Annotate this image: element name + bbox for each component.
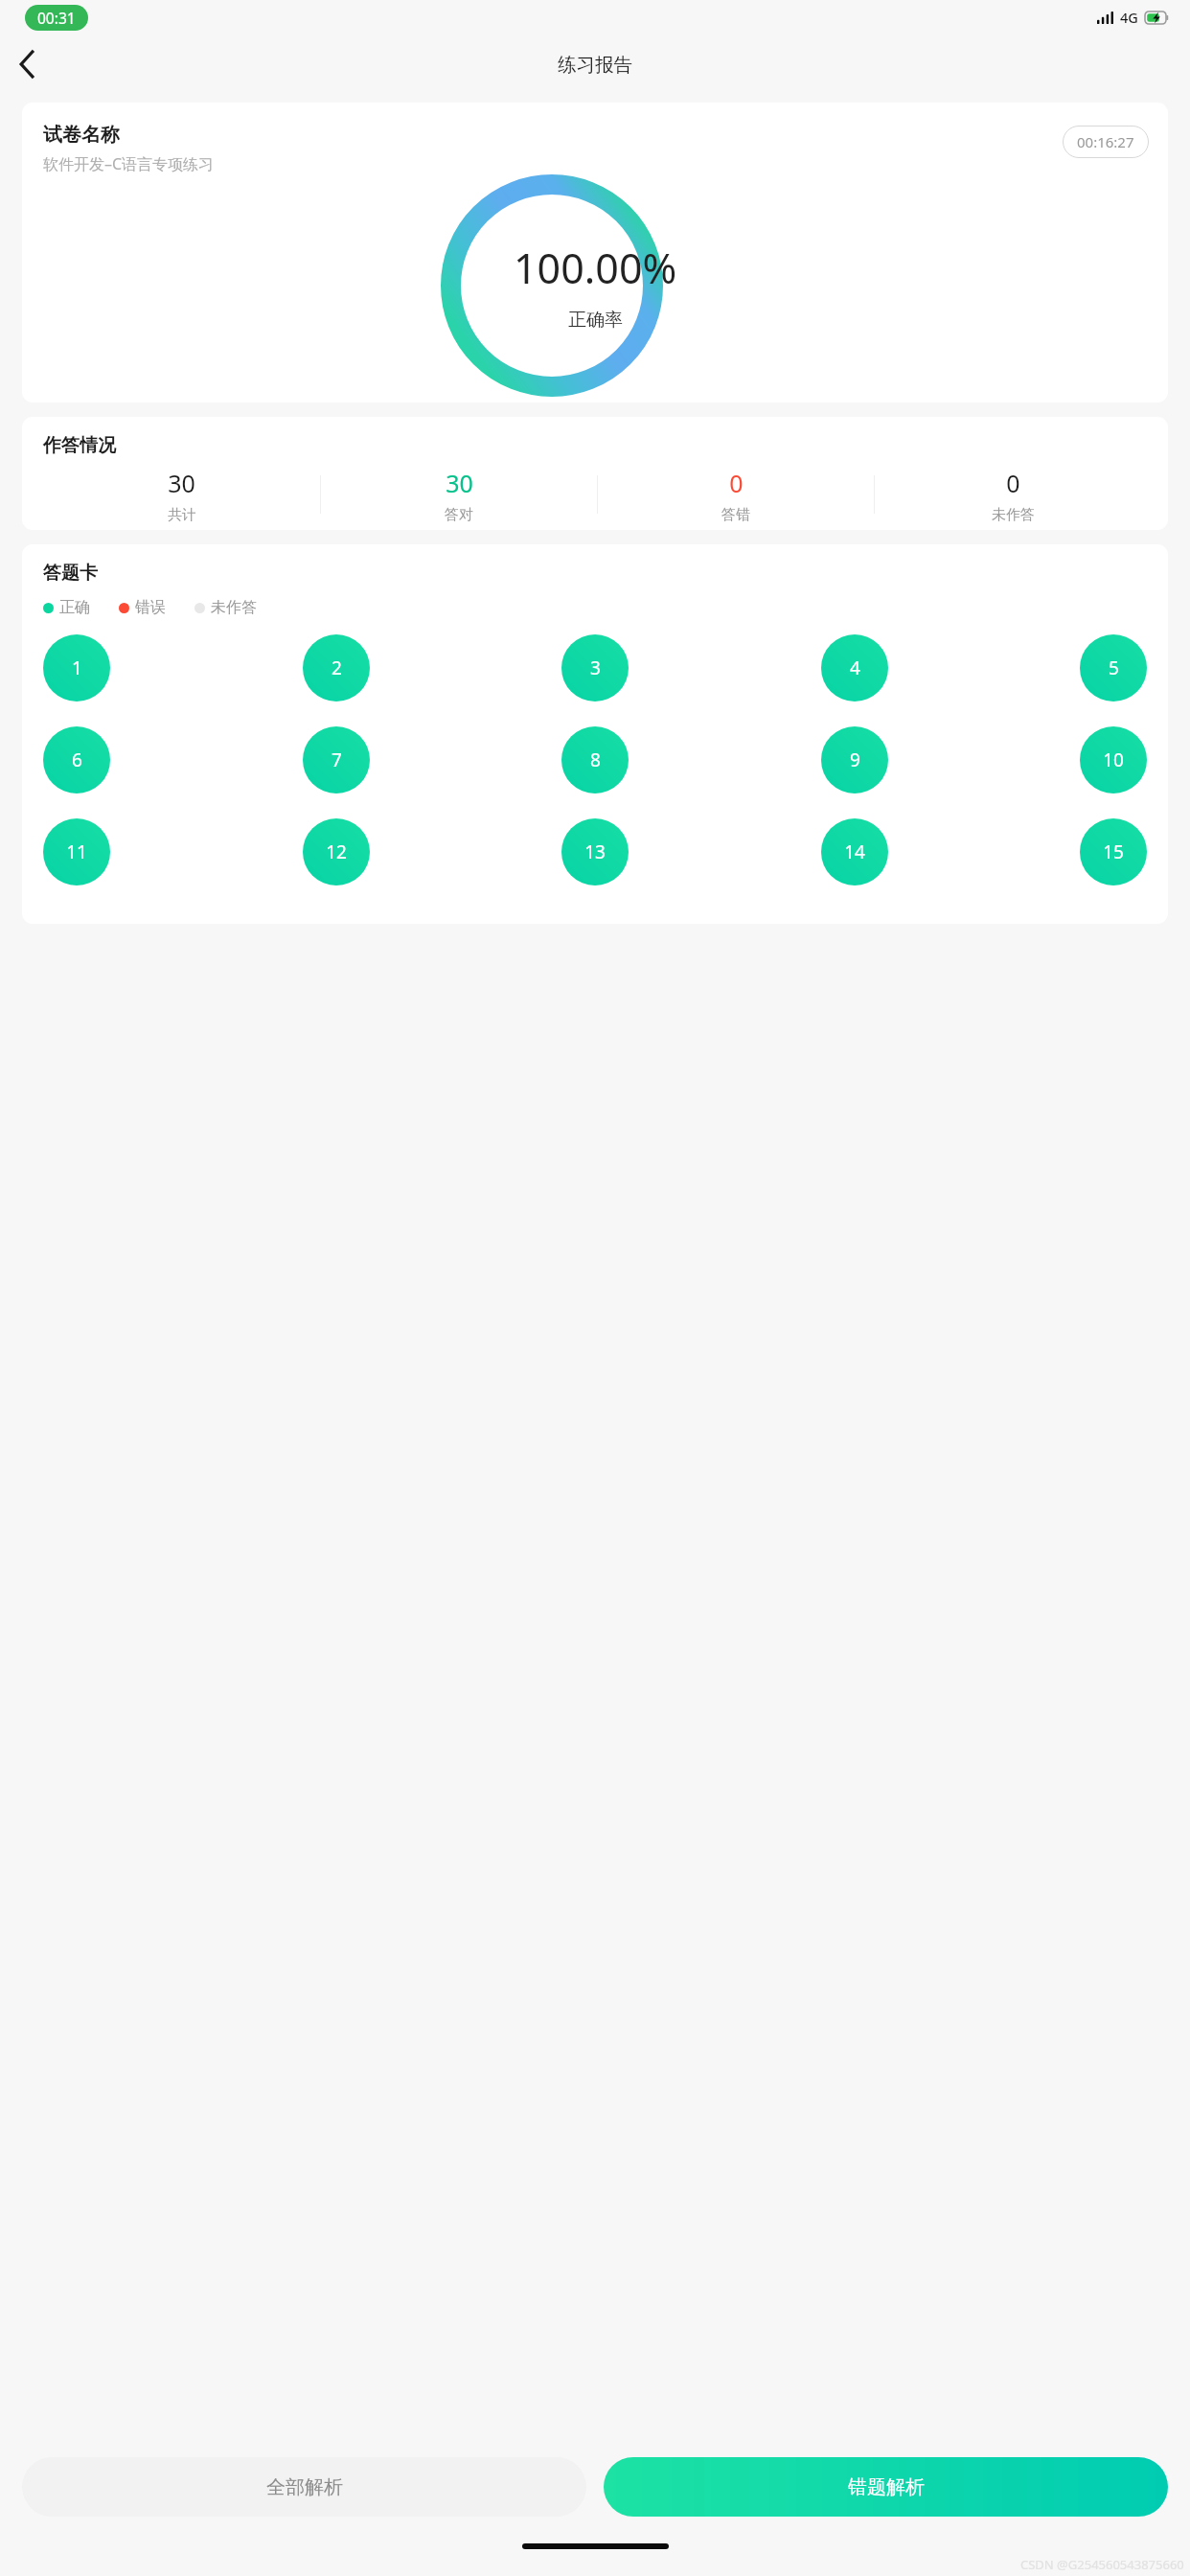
button[interactable]: 4	[821, 634, 888, 701]
button[interactable]: 错题解析	[604, 2457, 1168, 2517]
staticText: 作答情况	[43, 434, 116, 457]
button[interactable]: 15	[1080, 818, 1147, 885]
button[interactable]: 10	[1080, 726, 1147, 793]
staticText: 答对	[445, 506, 473, 522]
staticText: 13	[584, 839, 606, 864]
staticText: 30	[446, 467, 473, 499]
staticText: 未作答	[992, 506, 1035, 522]
staticText: 00:16:27	[1077, 132, 1134, 151]
button[interactable]: 2	[303, 634, 370, 701]
button[interactable]: 12	[303, 818, 370, 885]
staticText: 答题卡	[43, 562, 98, 585]
staticText: 4	[850, 655, 860, 680]
staticText: 14	[844, 839, 865, 864]
staticText: 未作答	[211, 598, 257, 617]
staticText: 共计	[168, 506, 196, 522]
staticText: 2	[332, 655, 342, 680]
button[interactable]: 14	[821, 818, 888, 885]
button[interactable]: 9	[821, 726, 888, 793]
staticText: CSDN @G254560543875660	[1020, 2556, 1184, 2573]
staticText: 10	[1103, 747, 1124, 772]
staticText: 12	[326, 839, 347, 864]
staticText: 错题解析	[848, 2475, 925, 2499]
staticText: 15	[1103, 839, 1124, 864]
button[interactable]: 11	[43, 818, 110, 885]
staticText: 30	[168, 467, 195, 499]
staticText: 100.00%	[514, 240, 677, 296]
staticText: 11	[66, 839, 87, 864]
staticText: 7	[332, 747, 342, 772]
staticText: 9	[850, 747, 860, 772]
staticText: 8	[590, 747, 601, 772]
staticText: 练习报告	[558, 53, 632, 77]
button[interactable]: 13	[561, 818, 629, 885]
staticText: 4G	[1120, 8, 1138, 27]
staticText: 6	[72, 747, 82, 772]
staticText: 正确率	[568, 309, 623, 332]
staticText: 错误	[135, 598, 166, 617]
staticText: 3	[590, 655, 601, 680]
button[interactable]: 5	[1080, 634, 1147, 701]
staticText: 00:31	[37, 8, 76, 28]
staticText: 0	[729, 467, 744, 499]
button[interactable]: 6	[43, 726, 110, 793]
button[interactable]: Back	[0, 37, 54, 91]
button[interactable]: 全部解析	[22, 2457, 586, 2517]
staticText: 5	[1109, 655, 1119, 680]
button[interactable]: 3	[561, 634, 629, 701]
staticText: 正确	[59, 598, 90, 617]
staticText: 软件开发–C语言专项练习	[43, 153, 215, 174]
button[interactable]: 8	[561, 726, 629, 793]
staticText: 试卷名称	[43, 123, 120, 147]
button[interactable]: 1	[43, 634, 110, 701]
staticText: 1	[72, 655, 82, 680]
staticText: 答错	[721, 506, 750, 522]
staticText: 0	[1006, 467, 1020, 499]
button[interactable]: 7	[303, 726, 370, 793]
staticText: 全部解析	[266, 2475, 343, 2499]
